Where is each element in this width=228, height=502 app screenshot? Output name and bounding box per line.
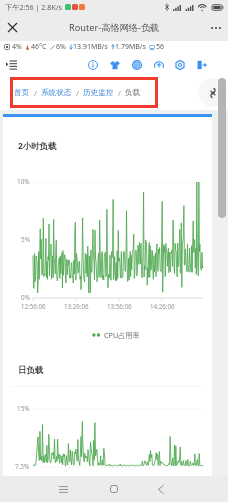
button[interactable]: Settings [172, 53, 188, 76]
button[interactable]: Upload [151, 53, 167, 76]
button[interactable]: Language [129, 53, 145, 76]
staticText: 首页 [14, 88, 30, 98]
button[interactable]: Back [147, 476, 175, 502]
staticText: 历史监控 [83, 88, 114, 98]
staticText: 日负载 [18, 365, 44, 376]
staticText: 14:26:06 [150, 302, 175, 310]
staticText: / [72, 88, 83, 98]
button[interactable]: Recents [49, 476, 77, 502]
button[interactable]: Info [85, 53, 101, 76]
staticText: 2小时负载 [18, 140, 57, 151]
button[interactable]: Link [198, 78, 227, 107]
staticText: 10% [17, 177, 30, 186]
staticText: 13:26:06 [64, 302, 89, 310]
staticText: 5% [21, 235, 30, 244]
staticText: Router-高恪网络-负载 [69, 21, 160, 34]
staticText: 15% [17, 404, 30, 413]
staticText: 13.91MB/s [73, 42, 108, 52]
staticText: 12:56:06 [21, 302, 46, 310]
staticText: 4% [12, 42, 22, 52]
button[interactable]: 首页 [10, 77, 158, 108]
button[interactable]: Logout [194, 53, 210, 76]
staticText: 下午2:56 | 2.8K/s [5, 2, 63, 12]
staticText: 46°C [31, 42, 47, 52]
button[interactable]: Menu [2, 56, 20, 74]
staticText: 系统状态 [41, 88, 72, 98]
staticText: 0% [21, 293, 30, 302]
staticText: 7.5% [15, 462, 30, 471]
button[interactable]: More options [204, 14, 228, 41]
staticText: 13:56:06 [107, 302, 132, 310]
staticText: 6% [56, 42, 66, 52]
staticText: 负载 [125, 88, 141, 98]
button[interactable]: Close [0, 14, 24, 41]
staticText: / [30, 88, 41, 98]
staticText: / [114, 88, 125, 98]
button[interactable]: Home [100, 476, 128, 502]
staticText: 1.79MB/s [115, 42, 146, 52]
staticText: CPU占用率 [104, 330, 140, 340]
button[interactable]: Theme [107, 53, 123, 76]
staticText: 56 [156, 42, 165, 52]
